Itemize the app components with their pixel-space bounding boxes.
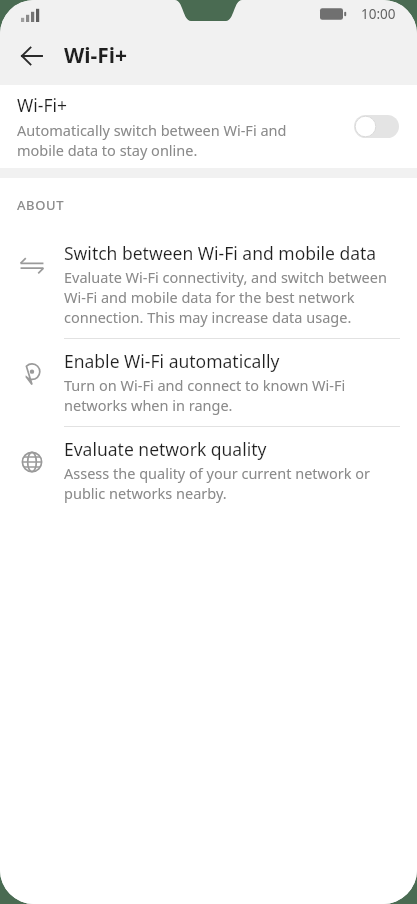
staticText: Wi-Fi+	[64, 41, 128, 70]
other: Enable Wi-Fi automatically	[17, 359, 47, 389]
staticText: Enable Wi-Fi automatically	[64, 349, 280, 373]
staticText: Wi-Fi+	[17, 93, 68, 117]
staticText: Switch between Wi-Fi and mobile data	[64, 241, 377, 265]
button[interactable]: Back	[8, 32, 56, 80]
button[interactable]: Switch between Wi-Fi and mobile data	[0, 231, 417, 338]
staticText: Turn on Wi-Fi and connect to known Wi-Fi…	[64, 375, 346, 415]
staticText: Automatically switch between Wi-Fi and m…	[17, 120, 287, 160]
staticText: ABOUT	[17, 196, 65, 214]
staticText: Evaluate network quality	[64, 437, 267, 461]
staticText: Assess the quality of your current netwo…	[64, 463, 371, 503]
button[interactable]: Evaluate network quality	[0, 427, 417, 514]
other: Evaluate network quality	[17, 447, 47, 477]
button[interactable]: Wi-Fi+	[0, 85, 417, 168]
button[interactable]: Enable Wi-Fi automatically	[0, 339, 417, 426]
other: Switch between Wi-Fi and mobile data	[17, 251, 47, 281]
staticText: Evaluate Wi-Fi connectivity, and switch …	[64, 267, 387, 327]
staticText: 10:00	[361, 5, 396, 23]
button[interactable]: Wi-Fi+ toggle	[354, 115, 399, 138]
